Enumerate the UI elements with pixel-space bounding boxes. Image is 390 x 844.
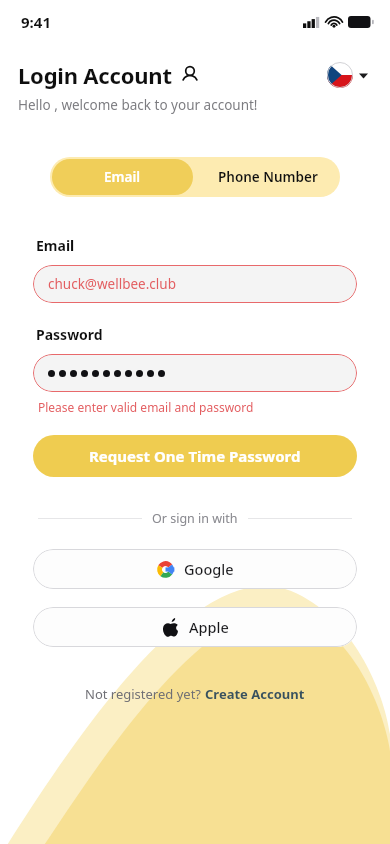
staticText: 9:41 [21,12,51,32]
staticText: chuck@wellbee.club [48,275,176,293]
staticText: Or sign in with [152,510,238,527]
staticText: Google [184,559,234,579]
button[interactable] [33,354,357,392]
button[interactable]: chuck@wellbee.club [33,265,357,303]
staticText: Email [36,236,75,255]
button[interactable]: Apple [33,607,357,647]
staticText: Not registered yet? [85,685,205,703]
staticText: Login Account [18,60,172,90]
button[interactable]: Create Account [205,685,305,703]
button[interactable]: Google [33,549,357,589]
button[interactable]: Select country [323,58,372,92]
button[interactable]: Request One Time Password [33,435,357,477]
staticText: Hello , welcome back to your account! [18,96,258,114]
staticText: Create Account [205,685,305,703]
staticText: Apple [189,617,229,637]
staticText: Please enter valid email and password [38,399,254,415]
staticText: Request One Time Password [89,446,301,466]
button[interactable]: Email [52,159,193,195]
button[interactable]: Phone Number [195,157,340,197]
staticText: Email [104,168,141,186]
staticText: Phone Number [218,168,318,186]
staticText: Password [36,325,103,344]
